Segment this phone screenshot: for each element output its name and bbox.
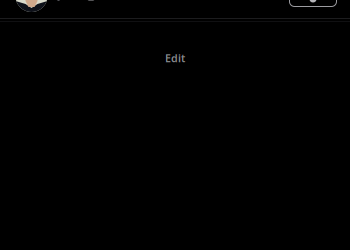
button[interactable]: Edit	[165, 51, 185, 65]
staticText: Edit	[165, 51, 185, 65]
button[interactable]: Account	[289, 0, 336, 6]
button[interactable]: Compose	[57, 0, 60, 1]
button[interactable]: Profile	[15, 0, 47, 12]
